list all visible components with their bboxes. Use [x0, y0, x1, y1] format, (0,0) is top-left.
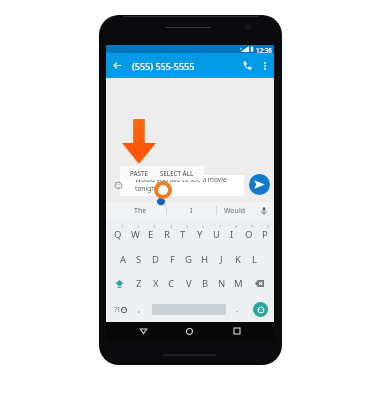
- button[interactable]: Would: [216, 202, 254, 219]
- button[interactable]: Z: [130, 271, 147, 295]
- button[interactable]: Back: [133, 322, 153, 340]
- button[interactable]: [120, 175, 244, 196]
- button[interactable]: X: [147, 271, 164, 295]
- button[interactable]: PASTE: [124, 166, 153, 180]
- staticText: R: [164, 228, 170, 241]
- button[interactable]: More options: [257, 53, 273, 78]
- staticText: PASTE: [130, 169, 148, 177]
- staticText: A: [120, 253, 127, 266]
- button[interactable]: S: [131, 247, 147, 271]
- staticText: L: [252, 253, 257, 266]
- staticText: V: [186, 277, 192, 290]
- staticText: Q: [114, 228, 122, 241]
- button[interactable]: E: [143, 222, 159, 246]
- button[interactable]: The: [114, 202, 166, 219]
- staticText: C: [168, 277, 175, 290]
- staticText: ?1: [114, 305, 121, 314]
- button[interactable]: SELECT ALL: [157, 166, 196, 180]
- button[interactable]: Voice input: [254, 202, 274, 219]
- button[interactable]: Send: [249, 174, 270, 195]
- button[interactable]: J: [213, 247, 229, 271]
- button[interactable]: R: [159, 222, 175, 246]
- staticText: Would: [224, 206, 246, 216]
- button[interactable]: O: [241, 222, 257, 246]
- button[interactable]: Q: [110, 222, 126, 246]
- staticText: Would you like to see a movie tonight?: [135, 175, 227, 193]
- button[interactable]: T: [175, 222, 191, 246]
- button[interactable]: L: [246, 247, 262, 271]
- staticText: 7: [219, 224, 222, 230]
- button[interactable]: K: [230, 247, 246, 271]
- staticText: O: [245, 228, 253, 241]
- staticText: B: [202, 277, 209, 290]
- staticText: ,: [138, 304, 141, 314]
- button[interactable]: P: [257, 222, 273, 246]
- staticText: H: [201, 253, 209, 266]
- staticText: 3: [153, 224, 156, 230]
- button[interactable]: Recents: [227, 322, 247, 340]
- staticText: Y: [197, 228, 203, 241]
- button[interactable]: .: [230, 297, 244, 321]
- staticText: T: [180, 228, 186, 241]
- button[interactable]: W: [127, 222, 143, 246]
- staticText: U: [213, 228, 220, 241]
- button[interactable]: Symbols: [107, 297, 133, 321]
- staticText: S: [136, 253, 142, 266]
- staticText: SELECT ALL: [160, 169, 194, 177]
- staticText: .: [236, 304, 239, 314]
- staticText: 0: [267, 224, 270, 230]
- staticText: 4: [170, 224, 173, 230]
- staticText: I: [230, 228, 234, 241]
- staticText: J: [220, 253, 223, 266]
- button[interactable]: F: [164, 247, 180, 271]
- staticText: K: [235, 253, 241, 266]
- button[interactable]: G: [180, 247, 196, 271]
- button[interactable]: U: [208, 222, 224, 246]
- button[interactable]: H: [197, 247, 213, 271]
- staticText: M: [234, 277, 243, 290]
- staticText: 9: [251, 224, 254, 230]
- staticText: 8: [235, 224, 238, 230]
- button[interactable]: N: [213, 271, 230, 295]
- button[interactable]: C: [163, 271, 180, 295]
- button[interactable]: B: [197, 271, 214, 295]
- staticText: The: [134, 206, 147, 216]
- staticText: 1: [121, 224, 124, 230]
- button[interactable]: Send: [247, 297, 273, 321]
- button[interactable]: Shift: [109, 271, 129, 295]
- button[interactable]: Emoji: [114, 182, 123, 189]
- button[interactable]: Backspace: [249, 271, 269, 295]
- button[interactable]: ,: [132, 297, 146, 321]
- button[interactable]: A: [115, 247, 131, 271]
- staticText: F: [170, 253, 175, 266]
- staticText: X: [153, 277, 159, 290]
- button[interactable]: I: [166, 202, 216, 219]
- staticText: P: [262, 228, 268, 241]
- staticText: E: [148, 228, 154, 241]
- button[interactable]: V: [180, 271, 197, 295]
- staticText: 6: [202, 224, 205, 230]
- button[interactable]: Space: [148, 297, 230, 321]
- button[interactable]: Y: [192, 222, 208, 246]
- staticText: (555) 555-5555: [132, 60, 195, 72]
- button[interactable]: Back: [106, 53, 128, 78]
- staticText: D: [152, 253, 159, 266]
- button[interactable]: M: [230, 271, 247, 295]
- button[interactable]: I: [224, 222, 240, 246]
- staticText: 12:36: [256, 46, 272, 54]
- staticText: N: [218, 277, 226, 290]
- button[interactable]: D: [147, 247, 163, 271]
- staticText: I: [190, 206, 193, 216]
- staticText: G: [185, 253, 192, 266]
- staticText: Z: [136, 277, 142, 290]
- button[interactable]: Home: [179, 322, 199, 340]
- staticText: W: [131, 228, 140, 241]
- staticText: 5: [186, 224, 189, 230]
- staticText: 2: [137, 224, 140, 230]
- button[interactable]: Call: [237, 53, 257, 78]
